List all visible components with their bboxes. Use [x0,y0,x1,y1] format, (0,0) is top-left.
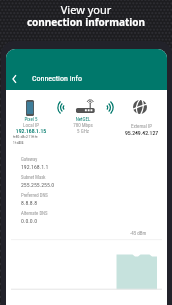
staticText: 1f:d404 [13,141,24,145]
staticText: Alternate DNS [21,211,48,217]
staticText: 192.168.1.15 [11,128,51,135]
staticText: Pixel 5 [11,116,51,122]
staticText: 8.8.8.8 [21,200,38,207]
staticText: 95.249.42.127 [121,130,162,137]
staticText: Local IP [11,122,51,128]
staticText: Preferred DNS [21,193,48,199]
staticText: fe80::d8c2:11ff:fe [13,135,38,139]
staticText: 255.255.255.0 [21,182,55,189]
staticText: External IP [121,123,162,129]
staticText: 5 GHz [63,128,103,134]
staticText: 192.168.1.1 [21,164,49,171]
staticText: Subnet Mask [21,175,46,181]
staticText: View your [0,2,172,17]
staticText: -45 dBm [130,230,147,236]
staticText: connection information [0,15,172,29]
staticText: Connection info [32,74,82,83]
staticText: Gateway [21,157,38,163]
staticText: 780 Mbps [63,122,103,128]
staticText: NetGEL [63,116,103,122]
button[interactable]: Back [9,72,21,86]
staticText: 0.0.0.0 [21,218,38,225]
